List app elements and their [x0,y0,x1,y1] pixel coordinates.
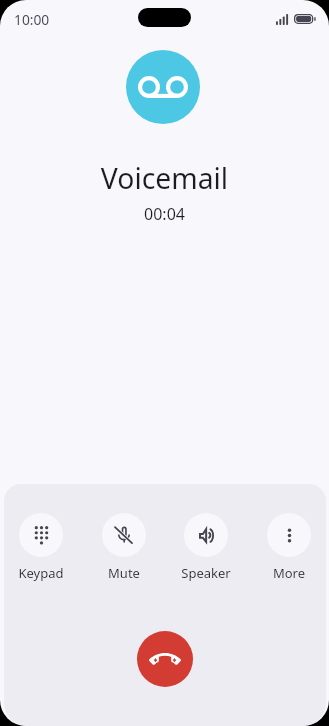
button[interactable]: Keypad [5,513,77,582]
staticText: Voicemail [0,159,329,198]
staticText: 10:00 [14,10,50,29]
staticText: 00:04 [0,203,329,225]
staticText: Speaker [170,564,242,582]
button[interactable]: Mute [88,513,160,582]
staticText: More [253,564,325,582]
button[interactable]: End call [137,631,193,687]
button[interactable]: Speaker [170,513,242,582]
staticText: Keypad [5,564,77,582]
staticText: Mute [88,564,160,582]
button[interactable]: More [253,513,325,582]
